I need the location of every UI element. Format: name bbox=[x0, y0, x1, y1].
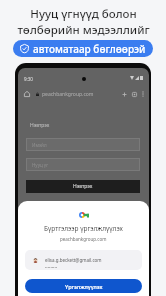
staticText: Нэвтрэх bbox=[30, 122, 50, 129]
staticText: Нууц үгнүүд болон bbox=[30, 6, 137, 22]
staticText: Имэйл bbox=[32, 142, 47, 148]
staticText: Нууц үг bbox=[32, 162, 49, 168]
other: New tab bbox=[122, 92, 127, 97]
staticText: Бүртгэлээр үргэлжлүүлэх bbox=[44, 224, 123, 233]
staticText: peachbankgroup.com bbox=[42, 91, 94, 98]
button[interactable]: elisa.g.beckett@gmail.com bbox=[25, 250, 142, 270]
staticText: ••••••••• bbox=[45, 265, 58, 270]
staticText: Үргэлжлүүлэх bbox=[65, 283, 103, 290]
staticText: автоматаар бөглөөрэй bbox=[33, 42, 146, 56]
button[interactable]: автоматаар бөглөөрэй bbox=[13, 40, 153, 57]
button[interactable]: Үргэлжлүүлэх bbox=[25, 279, 142, 293]
staticText: төлбөрийн мэдээллийг bbox=[17, 22, 150, 38]
other: Home bbox=[24, 91, 30, 97]
button[interactable]: Имэйл bbox=[26, 138, 140, 151]
staticText: Нэвтрэх bbox=[73, 183, 93, 190]
other: Tabs bbox=[132, 92, 137, 97]
button[interactable]: Нэвтрэх bbox=[26, 180, 140, 193]
staticText: elisa.g.beckett@gmail.com bbox=[45, 257, 102, 263]
button[interactable]: Нууц үг bbox=[26, 158, 140, 171]
other: More options bbox=[142, 91, 144, 97]
staticText: peachbankgroup.com bbox=[60, 236, 107, 242]
staticText: 9:30 bbox=[24, 76, 33, 82]
